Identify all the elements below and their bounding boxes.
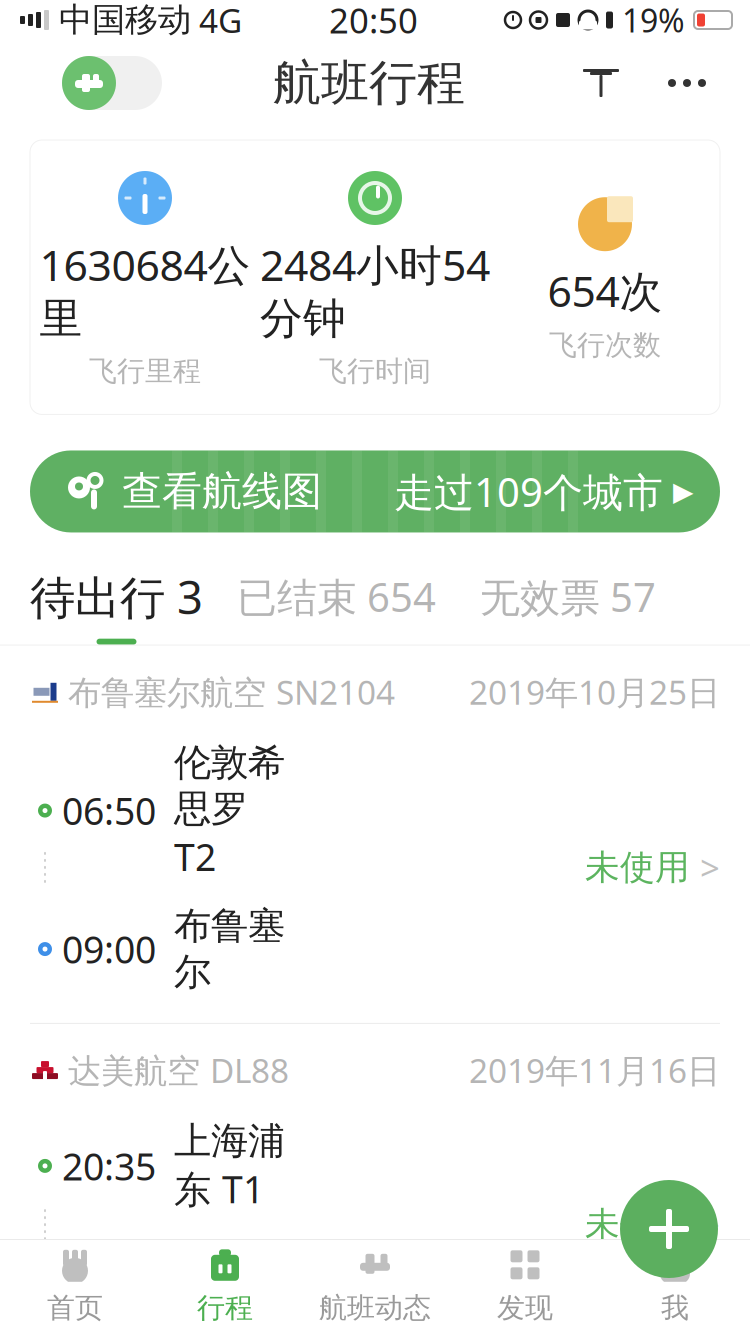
button[interactable]: 发现 xyxy=(450,1237,600,1334)
button[interactable]: 已结束 654 xyxy=(215,570,458,641)
button[interactable]: 首页 xyxy=(0,1237,150,1334)
staticText: 达美航空 DL88 xyxy=(68,1048,289,1092)
button[interactable]: 航班动态 xyxy=(300,1237,450,1334)
staticText: 20:50 xyxy=(329,0,418,43)
staticText: 2019年11月16日 xyxy=(469,1048,720,1092)
staticText: 航班行程 xyxy=(273,53,465,112)
staticText: 伦敦希思罗 T2 xyxy=(174,740,285,881)
staticText: 中国移动 xyxy=(59,0,191,40)
staticText: 飞行次数 xyxy=(549,328,661,362)
staticText: 19% xyxy=(622,0,685,41)
staticText: 654次 xyxy=(547,262,662,319)
staticText: 上海浦东 T1 xyxy=(174,1118,285,1214)
staticText: 布鲁塞尔航空 SN2104 xyxy=(68,670,395,714)
button[interactable]: 达美航空 DL88 xyxy=(0,1024,750,1334)
staticText: 飞行里程 xyxy=(89,354,201,388)
staticText: 洛杉矶 B xyxy=(174,1236,285,1331)
button[interactable]: 更多 xyxy=(652,58,722,108)
staticText: 走过109个城市 xyxy=(394,465,663,518)
staticText: 4G xyxy=(199,0,242,42)
staticText: > xyxy=(700,844,720,890)
staticText: 发现 xyxy=(497,1291,553,1325)
staticText: 1630684公里 xyxy=(39,236,250,345)
staticText: 查看航线图 xyxy=(122,467,322,516)
button[interactable]: 布鲁塞尔航空 SN2104 xyxy=(0,646,750,1023)
button[interactable]: 飞行模式开关 xyxy=(62,55,162,111)
staticText: 首页 xyxy=(47,1291,103,1325)
button[interactable]: 我 xyxy=(600,1237,750,1334)
staticText: 布鲁塞尔 xyxy=(174,903,285,995)
staticText: 未使用 xyxy=(585,1203,690,1246)
staticText: 已结束 654 xyxy=(237,570,436,623)
staticText: > xyxy=(700,1202,720,1248)
button[interactable]: 待出行 3 xyxy=(0,566,215,645)
staticText: 06:50 xyxy=(62,786,156,835)
staticText: 行程 xyxy=(197,1291,253,1325)
staticText: 16:25 xyxy=(62,1258,156,1308)
staticText: 待出行 3 xyxy=(30,566,203,627)
staticText: 我 xyxy=(661,1291,689,1325)
button[interactable]: 无效票 57 xyxy=(458,570,678,641)
staticText: 飞行时间 xyxy=(319,354,431,388)
button[interactable]: 添加行程 xyxy=(620,1180,718,1278)
staticText: 2019年10月25日 xyxy=(469,670,720,714)
staticText: 09:00 xyxy=(62,924,156,974)
staticText: 无效票 57 xyxy=(480,570,656,623)
button[interactable]: 查看航线图 xyxy=(30,450,720,532)
button[interactable]: 筛选 xyxy=(576,58,626,108)
staticText: ▶ xyxy=(673,476,694,507)
staticText: 航班动态 xyxy=(319,1291,431,1325)
staticText: 2484小时54分钟 xyxy=(260,236,490,345)
staticText: 20:35 xyxy=(62,1141,156,1191)
staticText: 未使用 xyxy=(585,846,690,889)
button[interactable]: 行程 xyxy=(150,1237,300,1334)
